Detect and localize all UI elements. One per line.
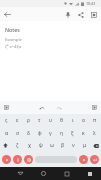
button[interactable]: ω xyxy=(46,139,57,152)
button[interactable]: ι xyxy=(67,114,78,127)
button[interactable]: ψ xyxy=(35,139,46,152)
button[interactable]: Space xyxy=(35,156,77,163)
staticText: ω xyxy=(50,142,54,149)
staticText: α xyxy=(5,130,9,137)
staticText: π xyxy=(93,117,97,124)
staticText: λ xyxy=(93,130,96,137)
staticText: ε xyxy=(16,117,19,124)
button[interactable]: γ xyxy=(45,127,56,139)
staticText: υ xyxy=(49,117,52,124)
button[interactable]: υ xyxy=(45,114,56,127)
button[interactable]: More options xyxy=(87,8,100,21)
staticText: ι xyxy=(72,117,74,124)
button[interactable]: ρ xyxy=(23,114,34,127)
staticText: δ xyxy=(27,130,30,137)
staticText: θ xyxy=(60,117,63,124)
button[interactable]: ε xyxy=(12,114,23,127)
button[interactable]: Redo xyxy=(52,101,65,114)
button[interactable]: Home xyxy=(37,167,50,180)
button[interactable]: Language xyxy=(24,155,33,164)
button[interactable]: More tools xyxy=(88,101,101,114)
staticText: ξ xyxy=(71,130,74,137)
staticText: 10:43 xyxy=(86,1,96,6)
staticText: ψ xyxy=(39,142,43,149)
button[interactable]: κ xyxy=(78,127,89,139)
button[interactable]: φ xyxy=(34,127,45,139)
staticText: σ xyxy=(16,130,20,137)
button[interactable]: Share xyxy=(74,8,87,21)
staticText: χ xyxy=(28,142,31,149)
staticText: ς xyxy=(5,117,8,124)
button[interactable]: χ xyxy=(23,139,35,152)
staticText: β xyxy=(61,142,65,149)
button[interactable]: τ xyxy=(34,114,45,127)
button[interactable]: ν xyxy=(68,139,79,152)
button[interactable]: Undo xyxy=(35,101,48,114)
staticText: ο xyxy=(82,117,86,124)
button[interactable]: ξ xyxy=(67,127,78,139)
button[interactable]: μ xyxy=(79,139,90,152)
staticText: ρ xyxy=(27,117,31,124)
staticText: ζ xyxy=(16,142,19,149)
button[interactable]: σ xyxy=(12,127,23,139)
staticText: Example xyxy=(5,37,22,43)
button[interactable]: θ xyxy=(56,114,67,127)
button[interactable]: Shift xyxy=(0,139,11,152)
button[interactable]: ς xyxy=(1,114,12,127)
staticText: ζ² x^4ξα xyxy=(5,44,22,50)
button[interactable]: η xyxy=(56,127,67,139)
button[interactable]: β xyxy=(57,139,68,152)
button[interactable]: ζ xyxy=(11,139,23,152)
staticText: η xyxy=(60,130,64,137)
staticText: ν xyxy=(72,142,75,149)
button[interactable]: ο xyxy=(78,114,89,127)
button[interactable]: Symbols xyxy=(2,155,11,164)
button[interactable]: α xyxy=(1,127,12,139)
button[interactable]: π xyxy=(89,114,100,127)
button[interactable]: λ xyxy=(89,127,100,139)
button[interactable]: Backspace xyxy=(90,139,101,152)
staticText: κ xyxy=(82,130,85,137)
staticText: μ xyxy=(83,142,87,149)
button[interactable]: Keyboard settings xyxy=(0,101,13,114)
staticText: τ xyxy=(38,117,41,124)
button[interactable]: δ xyxy=(23,127,34,139)
button[interactable]: Back xyxy=(0,7,14,21)
staticText: φ xyxy=(38,130,42,137)
staticText: Notes xyxy=(5,26,20,33)
button[interactable]: Pin note xyxy=(61,8,74,21)
button[interactable]: Back xyxy=(14,167,27,180)
button[interactable]: Recent apps xyxy=(60,167,73,180)
staticText: γ xyxy=(49,130,52,137)
button[interactable]: Enter xyxy=(90,155,99,164)
button[interactable]: Emoji xyxy=(13,155,22,164)
button[interactable]: Hide keyboard xyxy=(83,167,96,180)
button[interactable]: Comma xyxy=(79,155,88,164)
